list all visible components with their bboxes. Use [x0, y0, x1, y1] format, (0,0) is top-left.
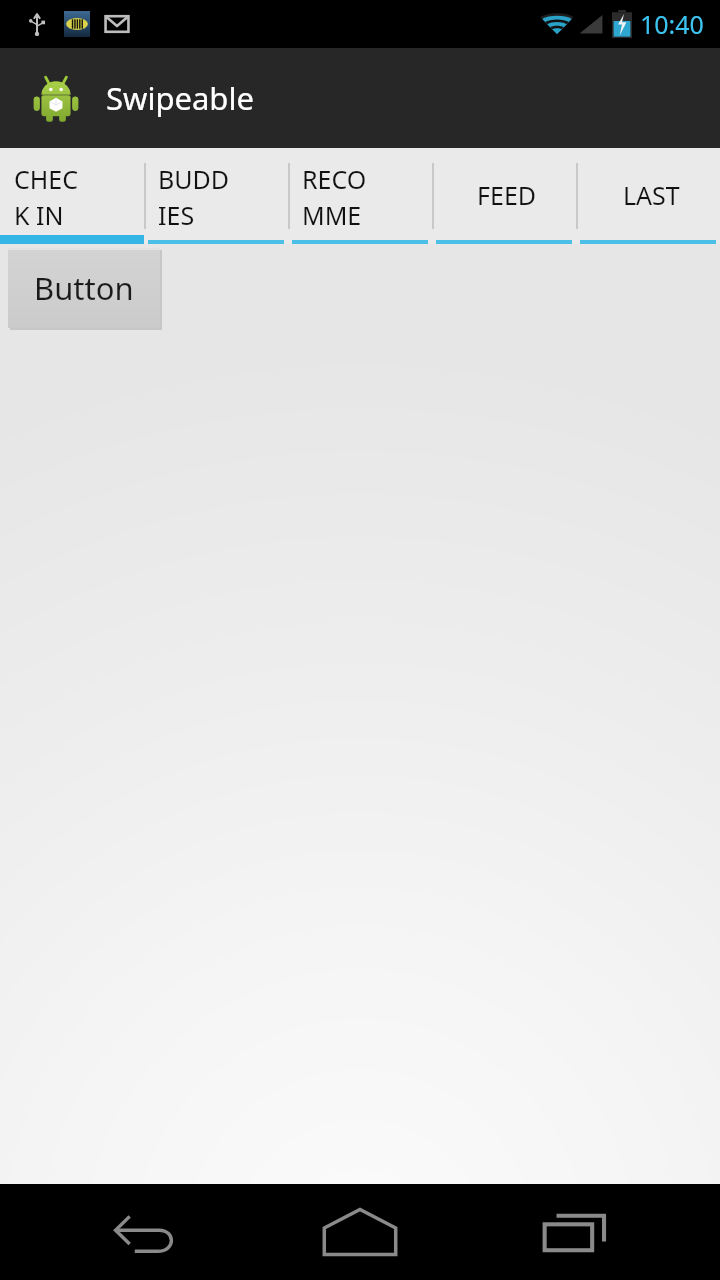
button[interactable]: RECO [288, 148, 432, 244]
button[interactable]: Button [8, 248, 160, 328]
staticText: FEED [477, 178, 537, 212]
button[interactable]: Recent apps [505, 1184, 645, 1280]
button[interactable]: Home [290, 1184, 430, 1280]
staticText: RECO [302, 162, 367, 196]
staticText: CHEC [14, 162, 79, 196]
staticText: MME [302, 198, 362, 232]
staticText: Button [34, 267, 134, 309]
button[interactable]: LAST [576, 148, 720, 244]
staticText: 10:40 [640, 7, 704, 41]
staticText: K IN [14, 198, 64, 232]
staticText: LAST [623, 178, 680, 212]
button[interactable]: CHEC [0, 148, 144, 244]
button[interactable]: Back [75, 1184, 215, 1280]
staticText: IES [158, 198, 195, 232]
button[interactable]: FEED [432, 148, 576, 244]
button[interactable]: BUDD [144, 148, 288, 244]
staticText: Swipeable [106, 77, 254, 119]
staticText: BUDD [158, 162, 230, 196]
